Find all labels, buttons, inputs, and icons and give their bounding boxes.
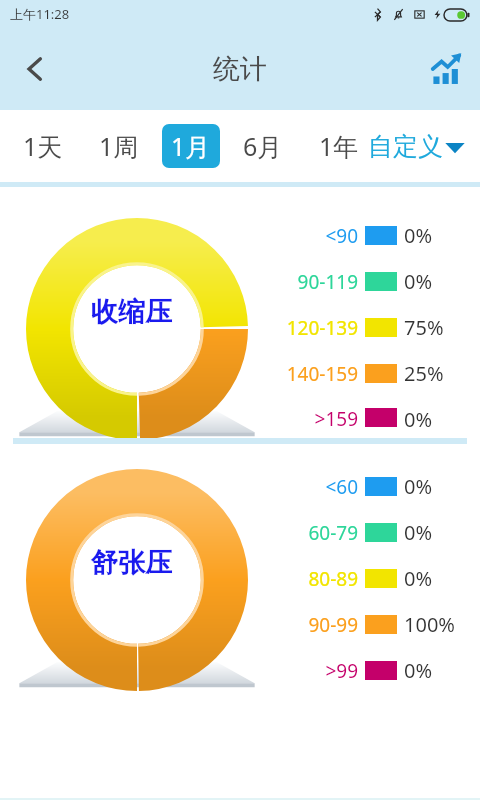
button[interactable]: 1年 — [310, 124, 368, 168]
staticText: 75% — [404, 314, 444, 341]
staticText: 0% — [404, 473, 433, 500]
button[interactable]: Back — [0, 28, 70, 110]
staticText: 25% — [404, 360, 444, 387]
staticText: 80-89 — [308, 566, 358, 592]
staticText: 1年 — [319, 129, 359, 163]
staticText: 140-159 — [286, 361, 358, 387]
staticText: 0% — [404, 268, 433, 295]
staticText: 0% — [404, 406, 433, 428]
staticText: 6月 — [243, 129, 283, 163]
staticText: 1周 — [99, 129, 139, 163]
staticText: <60 — [325, 474, 358, 500]
staticText: 0% — [404, 222, 433, 249]
staticText: 0% — [404, 657, 433, 684]
staticText: 90-119 — [297, 269, 358, 295]
button[interactable]: 自定义 — [368, 131, 466, 162]
staticText: 60-79 — [308, 520, 358, 546]
button[interactable]: 1天 — [14, 124, 72, 168]
staticText: 90-99 — [308, 612, 358, 638]
staticText: 上午11:28 — [10, 5, 70, 23]
button[interactable]: 6月 — [234, 124, 292, 168]
staticText: <90 — [325, 223, 358, 249]
staticText: 自定义 — [368, 131, 443, 162]
staticText: >99 — [325, 658, 358, 684]
staticText: 1天 — [23, 129, 63, 163]
staticText: 0% — [404, 519, 433, 546]
button[interactable]: Chart — [414, 28, 480, 110]
staticText: 统计 — [213, 52, 267, 86]
staticText: 舒张压 — [91, 546, 172, 580]
staticText: 0% — [404, 565, 433, 592]
staticText: 120-139 — [286, 315, 358, 341]
staticText: 1月 — [171, 129, 211, 163]
staticText: 100% — [404, 611, 455, 638]
staticText: 收缩压 — [91, 295, 172, 329]
button[interactable]: 1周 — [90, 124, 148, 168]
button[interactable]: 1月 — [162, 124, 220, 168]
staticText: >159 — [314, 406, 358, 428]
